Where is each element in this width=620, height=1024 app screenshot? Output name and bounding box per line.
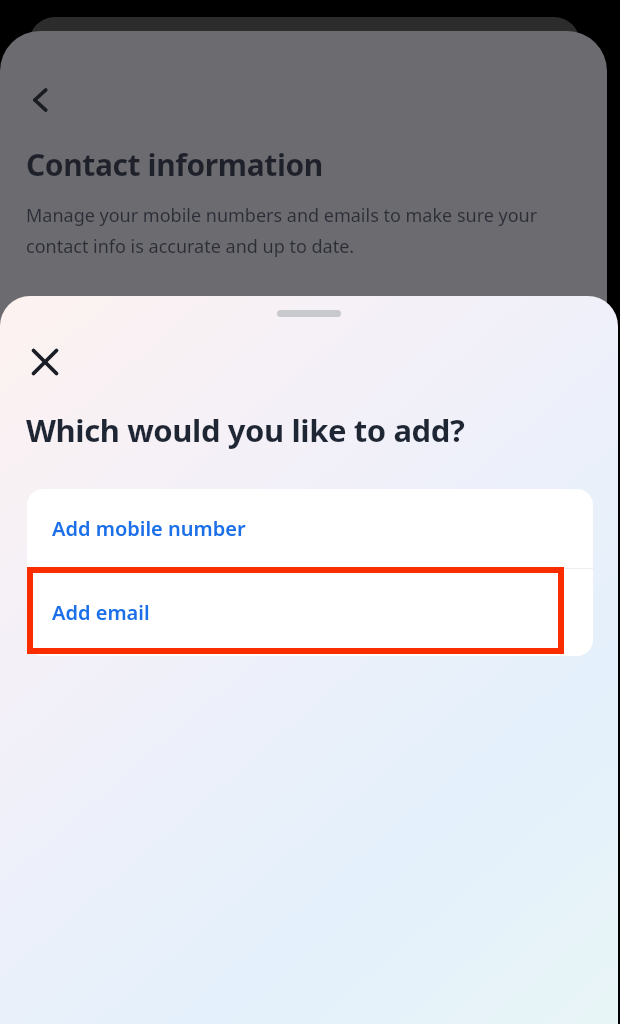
staticText: Contact information bbox=[26, 144, 323, 185]
button[interactable]: Add email bbox=[27, 569, 593, 656]
staticText: Manage your mobile numbers and emails to… bbox=[26, 203, 574, 259]
staticText: Add email bbox=[52, 599, 150, 626]
button[interactable]: Close bbox=[22, 339, 68, 385]
button[interactable]: Add mobile number bbox=[27, 489, 593, 568]
staticText: Add mobile number bbox=[52, 515, 246, 542]
staticText: Which would you like to add? bbox=[26, 409, 465, 451]
button[interactable]: Back bbox=[18, 77, 64, 123]
